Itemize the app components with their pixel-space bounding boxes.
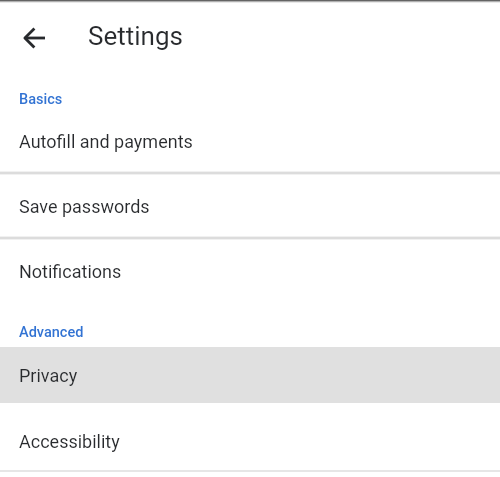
staticText: Advanced — [19, 324, 84, 341]
staticText: Privacy — [19, 365, 78, 386]
staticText: Settings — [88, 21, 183, 51]
button[interactable]: Notifications — [0, 239, 500, 303]
staticText: Notifications — [19, 261, 122, 282]
button[interactable]: Save passwords — [0, 174, 500, 237]
button[interactable] — [17, 20, 53, 56]
button[interactable]: Privacy — [0, 347, 500, 403]
staticText: Basics — [19, 91, 63, 108]
button[interactable]: Autofill and payments — [0, 109, 500, 173]
staticText: Autofill and payments — [19, 131, 193, 152]
staticText: Save passwords — [19, 196, 150, 217]
staticText: Accessibility — [19, 431, 120, 452]
button[interactable]: Accessibility — [0, 403, 500, 470]
